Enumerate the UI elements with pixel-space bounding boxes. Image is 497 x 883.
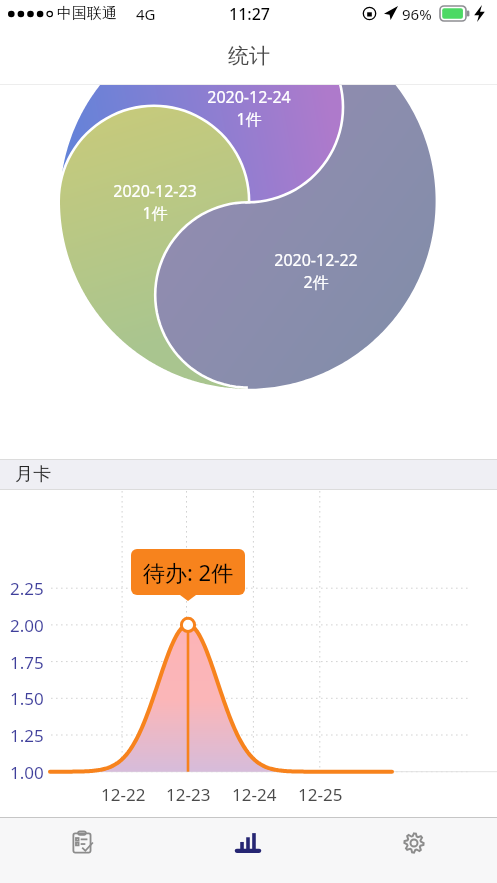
staticText: 2件	[303, 271, 329, 293]
button[interactable]: Tasks	[0, 818, 165, 883]
staticText: 2.25	[10, 577, 44, 600]
staticText: 2020-12-22	[274, 249, 358, 271]
staticText: 2.00	[10, 614, 44, 637]
staticText: 4G	[136, 4, 156, 24]
staticText: 12-22	[101, 783, 146, 806]
staticText: 12-25	[298, 783, 343, 806]
staticText: 2020-12-24	[207, 86, 291, 108]
staticText: 中国联通	[57, 4, 117, 23]
staticText: 1.00	[10, 761, 44, 784]
button[interactable]: Settings	[331, 818, 497, 883]
button[interactable]: Statistics	[165, 818, 331, 883]
staticText: 统计	[228, 43, 270, 69]
staticText: 12-24	[232, 783, 277, 806]
staticText: 1.25	[10, 724, 44, 747]
staticText: 1件	[142, 202, 168, 224]
staticText: 1件	[236, 108, 262, 130]
staticText: 1.75	[10, 651, 44, 674]
staticText: 96%	[402, 4, 432, 24]
staticText: 2020-12-23	[113, 180, 197, 202]
staticText: 11:27	[229, 3, 270, 25]
staticText: 12-23	[166, 783, 211, 806]
staticText: 月卡	[15, 463, 51, 486]
staticText: 1.50	[10, 687, 44, 710]
staticText: 待办: 2件	[143, 557, 234, 587]
